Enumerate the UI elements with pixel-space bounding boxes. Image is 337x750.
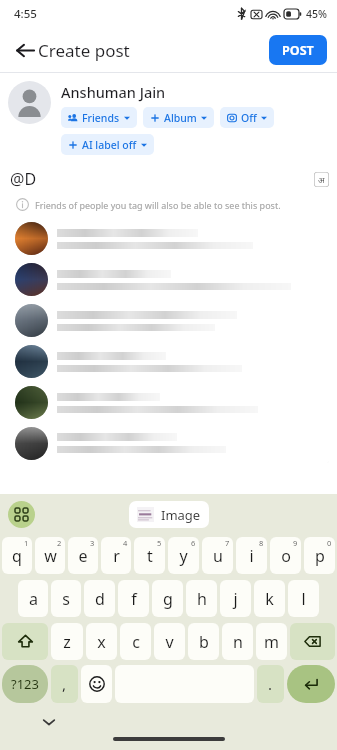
button[interactable]: o <box>270 537 301 574</box>
staticText: h <box>197 588 207 610</box>
button[interactable]: r <box>101 537 131 574</box>
staticText: f <box>131 588 137 610</box>
button[interactable] <box>8 382 329 423</box>
button[interactable]: AI label off <box>61 134 154 155</box>
staticText: POST <box>282 42 314 59</box>
button[interactable] <box>8 259 329 300</box>
staticText: Album <box>164 111 197 125</box>
button[interactable]: a <box>18 580 48 617</box>
staticText: 5 <box>157 538 162 548</box>
staticText: i <box>249 545 254 567</box>
staticText: AI label off <box>82 138 137 152</box>
button[interactable] <box>8 218 329 259</box>
button[interactable]: t <box>134 537 165 574</box>
button[interactable]: u <box>202 537 233 574</box>
button[interactable]: y <box>168 537 199 574</box>
button[interactable]: Image <box>129 501 209 528</box>
staticText: Friends of people you tag will also be a… <box>35 199 281 211</box>
button[interactable]: h <box>186 580 217 617</box>
button[interactable]: ?123 <box>2 665 48 703</box>
staticText: 1 <box>24 538 29 548</box>
button[interactable]: Toolbar <box>8 501 35 528</box>
button[interactable]: d <box>84 580 115 617</box>
button[interactable]: f <box>118 580 149 617</box>
button[interactable]: c <box>120 623 151 660</box>
staticText: l <box>301 588 306 610</box>
button[interactable]: s <box>51 580 81 617</box>
button[interactable]: Hide keyboard <box>38 711 60 733</box>
staticText: 4 <box>123 538 128 548</box>
button[interactable] <box>8 341 329 382</box>
staticText: Off <box>241 111 257 125</box>
button[interactable]: Shift <box>2 623 48 660</box>
staticText: 6 <box>191 538 196 548</box>
button[interactable] <box>8 81 51 124</box>
staticText: p <box>315 545 325 567</box>
staticText: 0 <box>327 538 332 548</box>
button[interactable]: Enter <box>287 665 335 703</box>
button[interactable]: POST <box>269 35 327 65</box>
staticText: k <box>265 588 274 610</box>
staticText: s <box>62 588 70 610</box>
button[interactable]: i <box>236 537 267 574</box>
staticText: ?123 <box>11 675 39 693</box>
staticText: w <box>44 545 57 567</box>
staticText: 45% <box>306 7 327 21</box>
staticText: e <box>78 545 88 567</box>
staticText: o <box>281 545 291 567</box>
staticText: 9 <box>293 538 298 548</box>
staticText: . <box>268 674 273 694</box>
button[interactable]: Friends <box>61 107 137 128</box>
button[interactable]: k <box>254 580 285 617</box>
button[interactable]: g <box>152 580 183 617</box>
staticText: Image <box>161 506 201 524</box>
staticText: अ <box>318 174 325 186</box>
staticText: 4:55 <box>14 6 37 22</box>
button[interactable]: l <box>288 580 319 617</box>
staticText: x <box>97 631 106 653</box>
staticText: t <box>147 545 153 567</box>
staticText: g <box>163 588 173 610</box>
button[interactable]: x <box>86 623 117 660</box>
button[interactable]: Emoji <box>81 665 112 703</box>
button[interactable]: Album <box>143 107 214 128</box>
staticText: q <box>12 545 22 567</box>
staticText: 7 <box>225 538 230 548</box>
button[interactable]: Back <box>6 31 44 69</box>
button[interactable]: , <box>51 665 78 703</box>
staticText: Create post <box>38 39 130 62</box>
button[interactable]: Backspace <box>290 623 335 660</box>
button[interactable]: w <box>35 537 65 574</box>
button[interactable]: . <box>257 665 284 703</box>
staticText: , <box>62 674 67 694</box>
button[interactable]: v <box>154 623 185 660</box>
staticText: y <box>179 545 188 567</box>
staticText: m <box>264 631 279 653</box>
staticText: v <box>165 631 174 653</box>
button[interactable] <box>8 423 329 463</box>
button[interactable]: m <box>256 623 287 660</box>
staticText: c <box>132 631 140 653</box>
staticText: @D <box>10 168 37 190</box>
staticText: n <box>233 631 243 653</box>
staticText: 3 <box>90 538 95 548</box>
button[interactable]: z <box>51 623 83 660</box>
button[interactable]: n <box>222 623 253 660</box>
button[interactable]: j <box>220 580 251 617</box>
staticText: Friends <box>82 111 120 125</box>
button[interactable]: Switch language <box>314 172 329 187</box>
button[interactable]: Off <box>220 107 274 128</box>
staticText: r <box>113 545 120 567</box>
staticText: b <box>199 631 209 653</box>
staticText: u <box>213 545 223 567</box>
staticText: j <box>233 588 238 610</box>
button[interactable]: p <box>304 537 335 574</box>
staticText: Anshuman Jain <box>61 82 166 102</box>
button[interactable]: b <box>188 623 219 660</box>
button[interactable] <box>8 300 329 341</box>
button[interactable]: e <box>68 537 98 574</box>
staticText: z <box>63 631 71 653</box>
staticText: 8 <box>259 538 264 548</box>
button[interactable]: q <box>2 537 32 574</box>
